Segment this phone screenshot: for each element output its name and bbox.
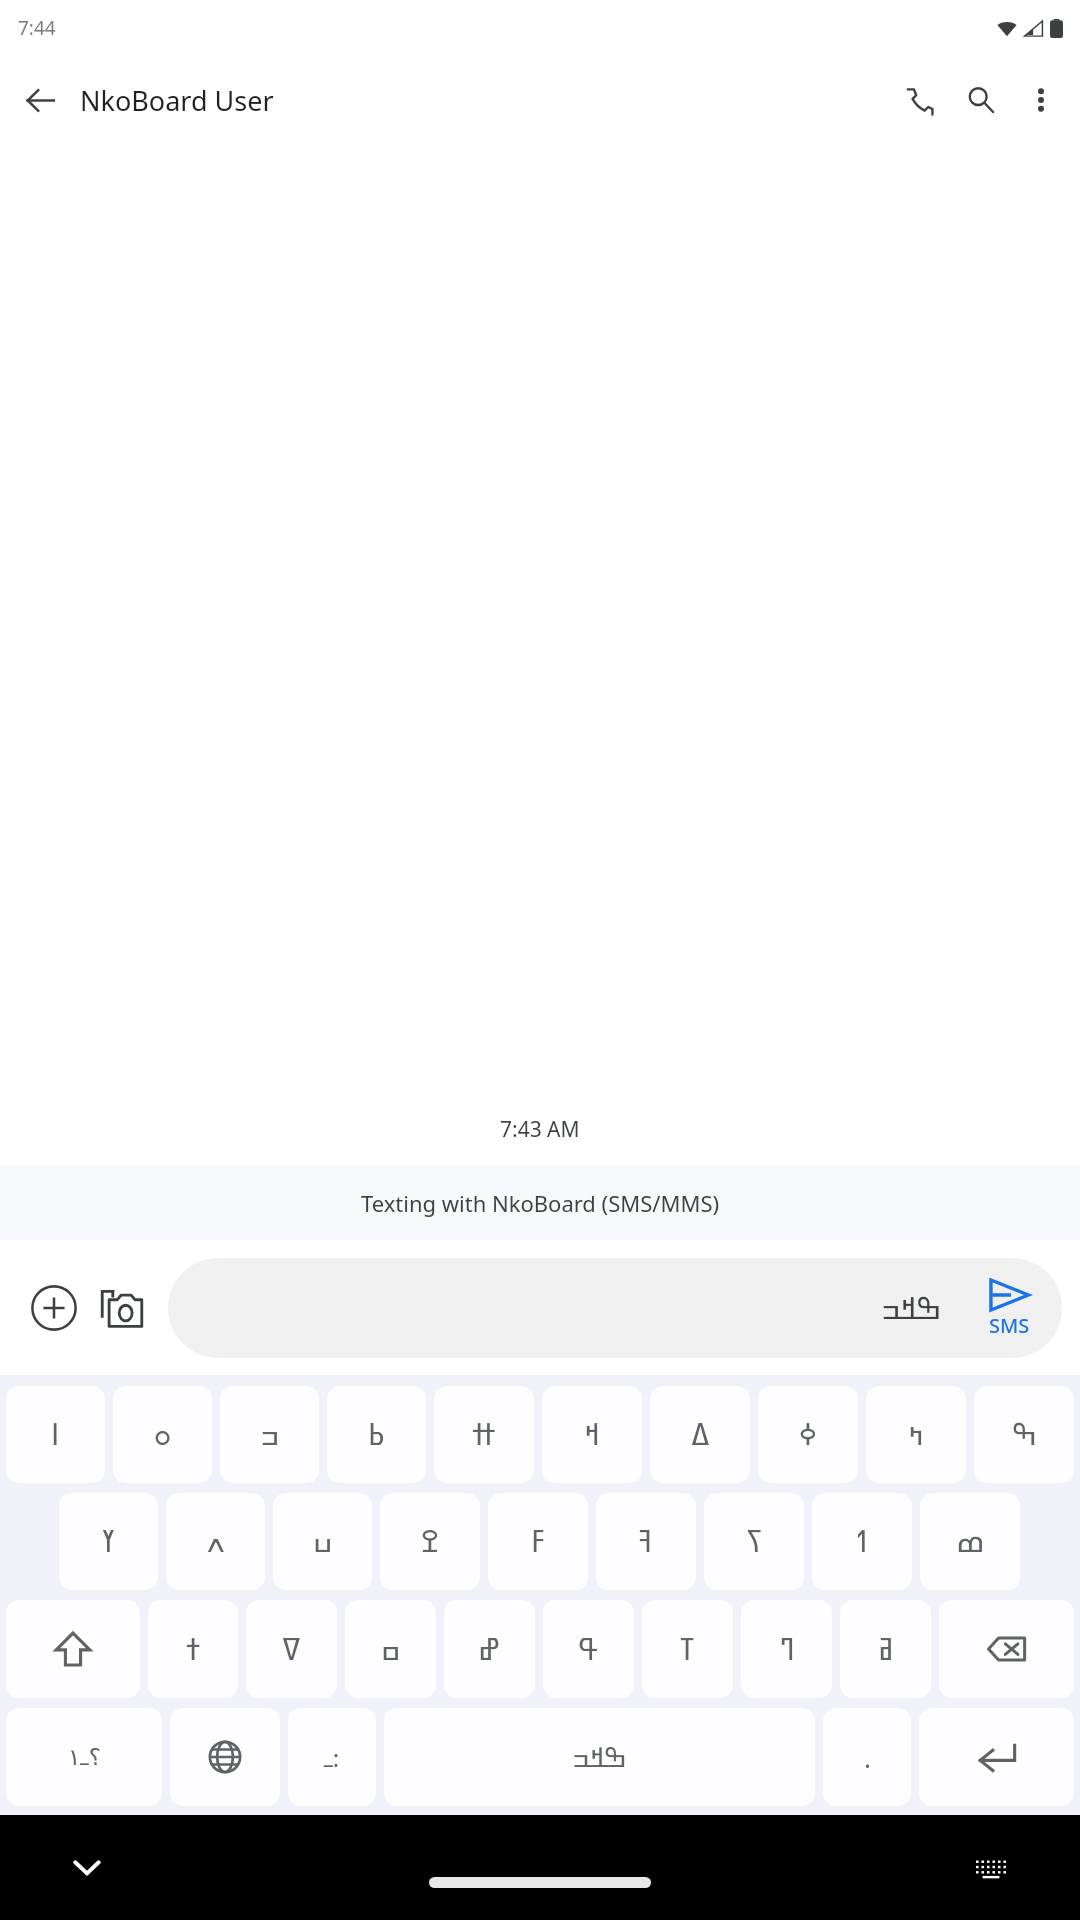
staticText: 7:43 AM [500,1115,580,1144]
button[interactable]: ߣ [741,1600,832,1698]
button[interactable]: ߒߞߏ [168,1258,1062,1358]
button[interactable]: ߕ [327,1386,426,1483]
button[interactable]: ߝ [444,1600,535,1698]
staticText: ߗ [857,1524,868,1559]
button[interactable]: ؟ߺ١ [6,1708,162,1806]
button[interactable]: ߎ [273,1493,372,1590]
staticText: ߍ [207,1524,225,1559]
staticText: ߕ [368,1417,385,1452]
button[interactable]: ߗ [812,1493,912,1590]
button[interactable]: Search [950,69,1012,131]
staticText: ߜ [282,1632,301,1667]
button[interactable]: ߐ [380,1493,480,1590]
staticText: ؟ߺ١ [68,1744,101,1771]
staticText: ߋ [154,1417,172,1452]
staticText: ߠ [680,1632,695,1667]
button[interactable]: ߒߞߏ [384,1708,815,1806]
button[interactable]: ߞ [542,1386,642,1483]
button[interactable]: ߚ [434,1386,534,1483]
staticText: ߚ [472,1417,496,1452]
button[interactable]: ߓ [488,1493,588,1590]
button[interactable] [429,1877,651,1888]
button[interactable]: ߌ [59,1493,158,1590]
staticText: ߟ [578,1632,600,1667]
staticText: ߐ [421,1524,439,1559]
staticText: ߎ [313,1524,333,1559]
button[interactable]: Attach [20,1274,88,1342]
button[interactable]: ߒ [974,1386,1074,1483]
staticText: ߘ [956,1524,985,1559]
button[interactable]: Send SMS [984,1276,1034,1341]
button[interactable]: ߘ [920,1493,1020,1590]
button[interactable]: Enter [919,1708,1074,1806]
button[interactable]: ߥ [840,1600,931,1698]
button[interactable]: ߊ [6,1386,105,1483]
staticText: ߏ [260,1417,280,1452]
button[interactable]: ߦ [758,1386,858,1483]
button[interactable]: ߛ [345,1600,436,1698]
staticText: SMS [989,1312,1030,1339]
staticText: ߺ: [324,1741,340,1774]
button[interactable]: Backspace [939,1600,1074,1698]
button[interactable]: ߙ [148,1600,238,1698]
button[interactable]: Back [12,72,68,128]
button[interactable]: ߔ [596,1493,696,1590]
button[interactable]: ߍ [166,1493,265,1590]
button[interactable]: ߖ [704,1493,804,1590]
staticText: ߙ [186,1632,201,1667]
staticText: 7:44 [18,15,56,41]
button[interactable]: Switch keyboard [962,1839,1020,1897]
staticText: ߦ [799,1417,817,1452]
button[interactable]: ߟ [543,1600,634,1698]
button[interactable]: . [823,1708,911,1806]
button[interactable]: Camera [88,1274,156,1342]
button[interactable]: Shift [6,1600,140,1698]
staticText: Texting with NkoBoard (SMS/MMS) [361,1188,720,1218]
staticText: ߝ [478,1632,501,1667]
staticText: ߓ [531,1524,545,1559]
staticText: ߤ [908,1417,924,1452]
staticText: ߊ [51,1417,60,1452]
staticText: ߡ [691,1417,710,1452]
staticText: ߒߞߏ [881,1291,942,1326]
staticText: ߥ [878,1632,894,1667]
staticText: ߔ [639,1524,653,1559]
button[interactable]: ߜ [246,1600,337,1698]
staticText: ߞ [584,1417,600,1452]
button[interactable]: ߋ [113,1386,212,1483]
staticText: ߣ [779,1632,795,1667]
button[interactable]: Hide keyboard [58,1839,116,1897]
button[interactable]: Change language [170,1708,280,1806]
staticText: ߒ [1012,1417,1037,1452]
staticText: ߌ [102,1524,115,1559]
staticText: NkoBoard User [80,82,888,119]
staticText: ߛ [381,1632,401,1667]
staticText: ߖ [745,1524,764,1559]
button[interactable]: More options [1012,71,1070,129]
staticText: . [864,1740,871,1775]
button[interactable]: ߤ [866,1386,966,1483]
button[interactable]: Call [888,69,950,131]
button[interactable]: ߡ [650,1386,750,1483]
button[interactable]: ߏ [220,1386,319,1483]
button[interactable]: ߺ: [288,1708,376,1806]
staticText: ߒߞߏ [572,1742,627,1773]
button[interactable]: ߠ [642,1600,733,1698]
